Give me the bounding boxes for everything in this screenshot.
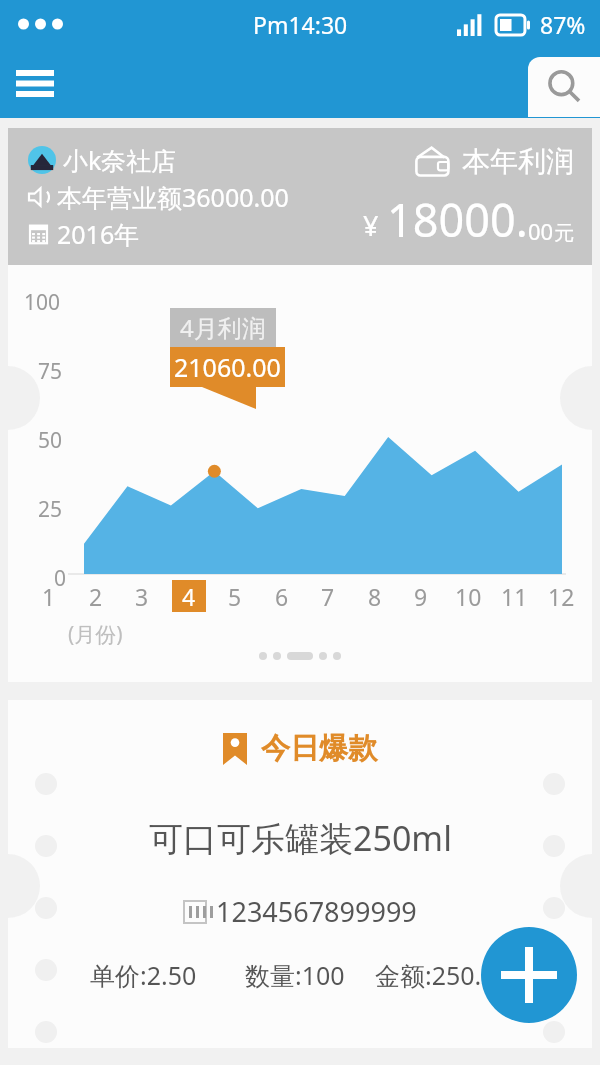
button[interactable]: Search (528, 57, 600, 117)
staticText: 18000. (387, 189, 528, 250)
button[interactable]: 10 (451, 580, 485, 612)
staticText: 本年利润 (462, 144, 574, 179)
staticText: 87% (540, 9, 586, 40)
staticText: 10 (455, 581, 482, 612)
staticText: (月份) (68, 620, 123, 649)
staticText: 50 (38, 426, 63, 455)
staticText: 11 (501, 581, 528, 612)
staticText: 75 (38, 357, 63, 386)
button[interactable]: Add item (481, 927, 577, 1023)
staticText: 4 (182, 581, 196, 612)
staticText: 今日爆款 (261, 730, 377, 767)
staticText: 单价:2.50 (90, 958, 197, 992)
staticText: 6 (275, 581, 289, 612)
staticText: 5 (228, 581, 242, 612)
staticText: 小k奈社店 (63, 143, 177, 177)
staticText: 元 (554, 221, 574, 246)
staticText: 7 (321, 581, 335, 612)
staticText: 00 (528, 216, 554, 246)
staticText: 可口可乐罐装250ml (149, 815, 452, 861)
staticText: 9 (414, 581, 428, 612)
staticText: 21060.00 (174, 350, 281, 384)
staticText: 100 (24, 288, 61, 317)
button[interactable]: 3 (125, 580, 159, 612)
button[interactable]: 5 (218, 580, 252, 612)
button[interactable]: 6 (265, 580, 299, 612)
staticText: 金额:250.00 (375, 958, 510, 992)
button[interactable]: 4 (172, 580, 206, 612)
button[interactable]: 2 (79, 580, 113, 612)
button[interactable]: Menu (8, 56, 62, 110)
staticText: 3 (135, 581, 149, 612)
button[interactable]: 11 (497, 580, 531, 612)
staticText: 25 (38, 495, 63, 524)
button[interactable]: 1 (32, 580, 66, 612)
staticText: 2016年 (57, 217, 140, 251)
button[interactable]: 8 (358, 580, 392, 612)
staticText: 0 (54, 564, 67, 593)
staticText: 8 (368, 581, 382, 612)
button[interactable]: 7 (311, 580, 345, 612)
staticText: 12 (548, 581, 575, 612)
staticText: 2 (89, 581, 103, 612)
staticText: 1234567899999 (216, 893, 417, 930)
staticText: ¥ (363, 207, 379, 244)
button[interactable]: 12 (544, 580, 578, 612)
staticText: 4月利润 (180, 311, 266, 344)
staticText: 本年营业额36000.00 (57, 180, 289, 214)
button[interactable]: 9 (404, 580, 438, 612)
staticText: 数量:100 (245, 958, 345, 992)
staticText: Pm14:30 (253, 9, 348, 40)
staticText: 1 (42, 581, 56, 612)
